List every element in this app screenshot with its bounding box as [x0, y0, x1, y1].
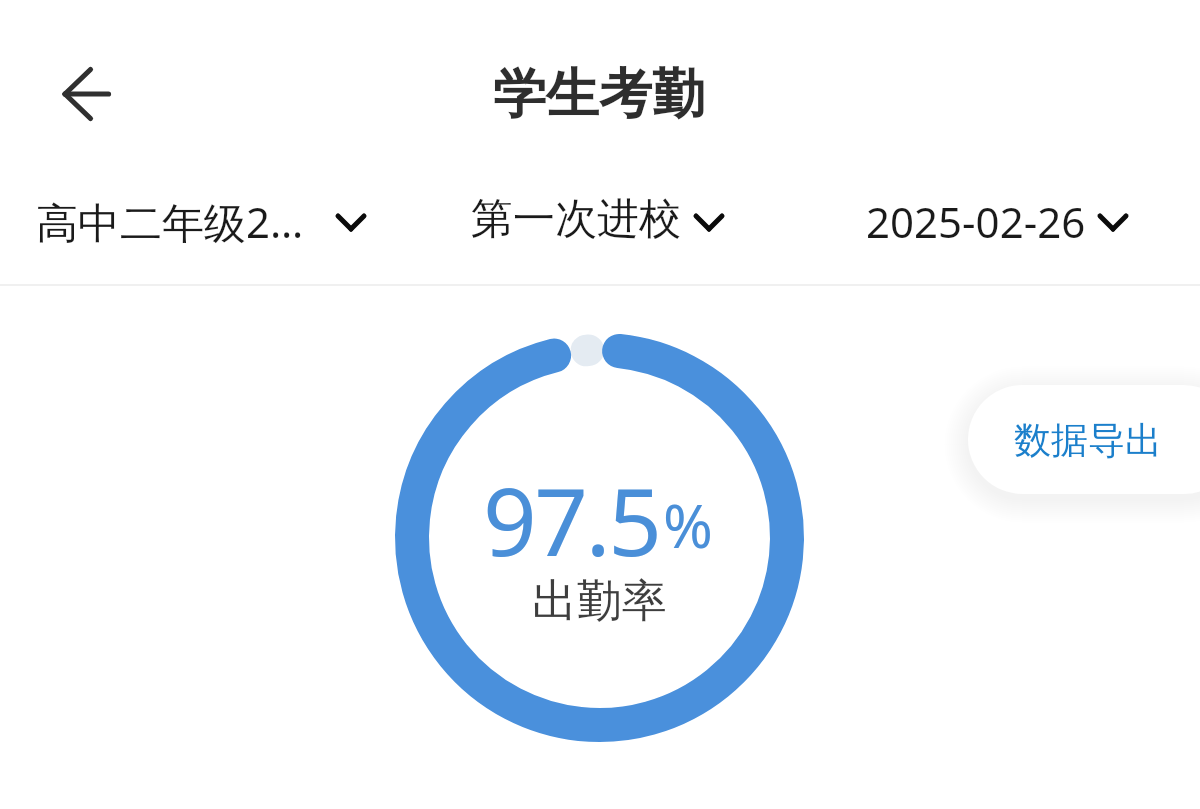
staticText: 第一次进校: [471, 193, 681, 246]
staticText: 97.5: [483, 456, 660, 584]
staticText: 高中二年级2…: [36, 193, 304, 250]
button[interactable]: 数据导出: [968, 385, 1200, 494]
button[interactable]: 2025-02-26: [852, 182, 1143, 282]
staticText: 学生考勤: [493, 61, 705, 128]
staticText: 2025-02-26: [866, 193, 1086, 250]
staticText: %: [663, 484, 713, 566]
staticText: 数据导出: [1014, 417, 1162, 464]
button[interactable]: Back: [44, 64, 130, 124]
staticText: 出勤率: [532, 573, 667, 630]
button[interactable]: 高中二年级2…: [22, 182, 381, 282]
button[interactable]: 第一次进校: [457, 182, 739, 282]
